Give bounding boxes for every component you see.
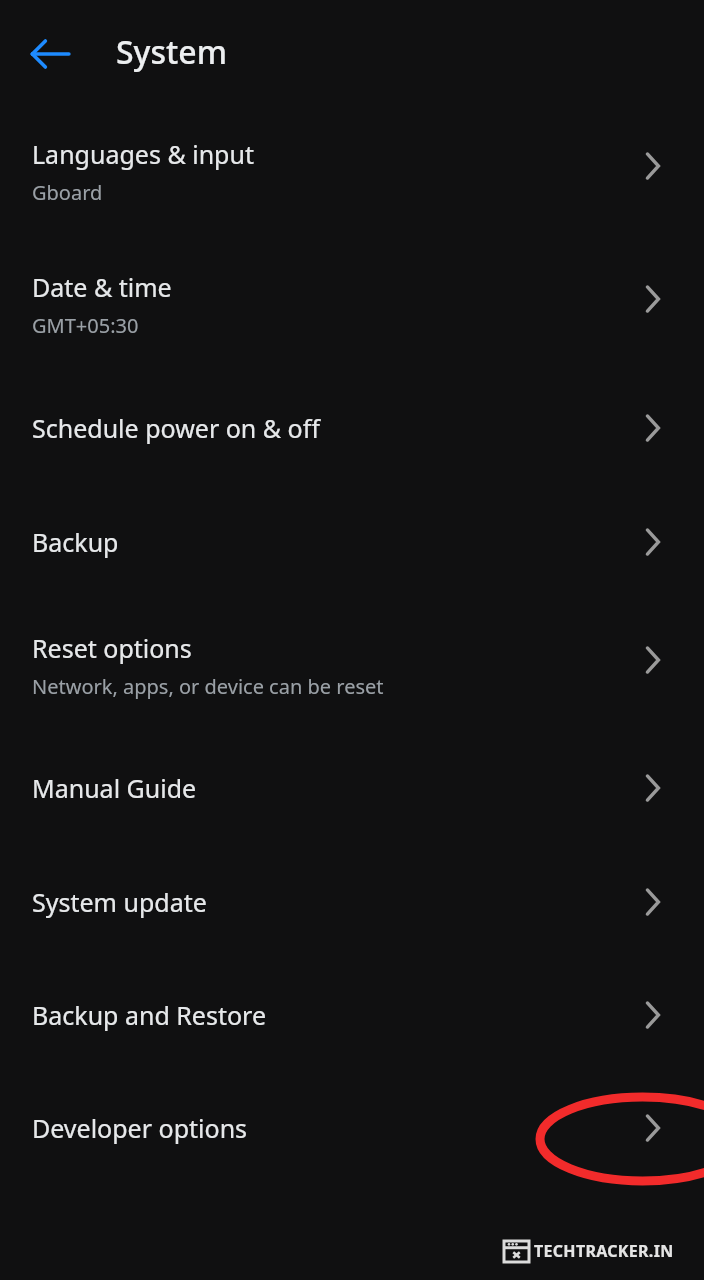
- staticText: TECHTRACKER.IN: [534, 1240, 674, 1262]
- staticText: Manual Guide: [32, 771, 197, 805]
- staticText: Network, apps, or device can be reset: [32, 673, 384, 700]
- button[interactable]: Languages & input: [0, 115, 704, 228]
- button[interactable]: Back: [22, 26, 78, 82]
- staticText: Backup: [32, 525, 119, 559]
- button[interactable]: Manual Guide: [0, 738, 704, 838]
- button[interactable]: Schedule power on & off: [0, 378, 704, 478]
- staticText: Gboard: [32, 179, 103, 206]
- staticText: Languages & input: [32, 137, 254, 171]
- button[interactable]: Reset options: [0, 609, 704, 722]
- staticText: GMT+05:30: [32, 312, 139, 339]
- staticText: Backup and Restore: [32, 998, 267, 1032]
- staticText: Schedule power on & off: [32, 411, 320, 445]
- button[interactable]: System update: [0, 852, 704, 952]
- button[interactable]: Backup and Restore: [0, 965, 704, 1065]
- staticText: Date & time: [32, 270, 172, 304]
- staticText: Reset options: [32, 631, 192, 665]
- staticText: Developer options: [32, 1111, 248, 1145]
- staticText: System: [116, 30, 227, 74]
- button[interactable]: Developer options: [0, 1078, 704, 1178]
- button[interactable]: Date & time: [0, 248, 704, 361]
- button[interactable]: Backup: [0, 492, 704, 592]
- staticText: System update: [32, 885, 207, 919]
